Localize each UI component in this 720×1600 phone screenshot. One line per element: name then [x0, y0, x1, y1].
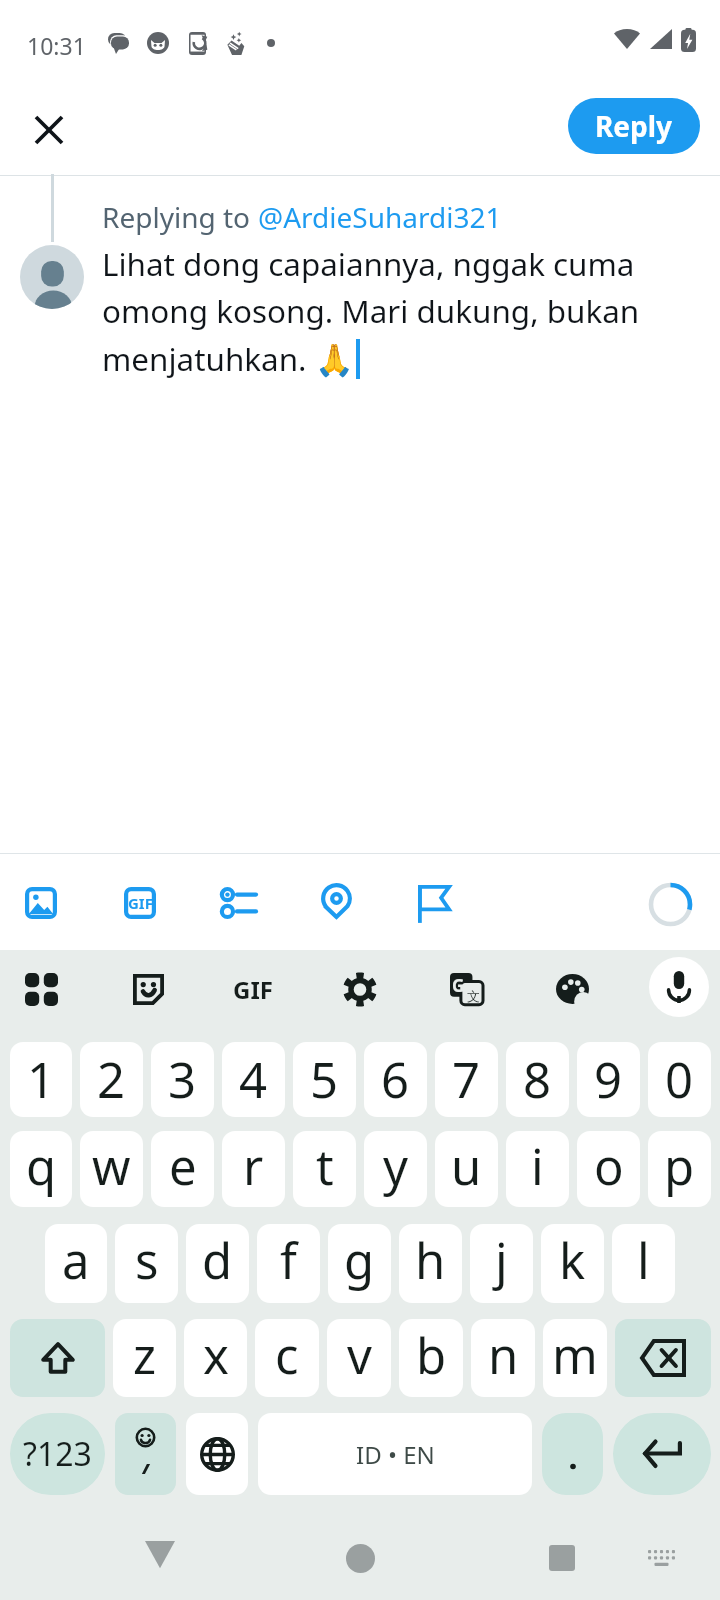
- staticText: 8: [523, 1046, 552, 1113]
- staticText: 3: [168, 1046, 197, 1113]
- staticText: 9: [594, 1046, 623, 1113]
- button[interactable]: Characters remaining: [646, 878, 695, 927]
- staticText: g: [344, 1227, 375, 1294]
- button[interactable]: Apps: [15, 963, 67, 1015]
- button[interactable]: 9: [577, 1042, 640, 1117]
- button[interactable]: Close: [20, 101, 77, 158]
- button[interactable]: Translate: [440, 963, 492, 1015]
- button[interactable]: Hide keyboard: [627, 1524, 695, 1592]
- button[interactable]: [542, 1413, 603, 1495]
- button[interactable]: m: [543, 1319, 607, 1397]
- button[interactable]: 6: [364, 1042, 427, 1117]
- staticText: p: [664, 1133, 695, 1200]
- button[interactable]: e: [151, 1131, 214, 1207]
- button[interactable]: Emoji and comma: [115, 1413, 176, 1495]
- staticText: 5: [310, 1046, 339, 1113]
- staticText: 6: [381, 1046, 410, 1113]
- button[interactable]: Recents: [528, 1524, 596, 1592]
- staticText: 1: [27, 1046, 56, 1113]
- staticText: n: [488, 1322, 519, 1389]
- button[interactable]: a: [45, 1224, 107, 1303]
- button[interactable]: Backspace: [615, 1319, 711, 1397]
- button[interactable]: u: [435, 1131, 498, 1207]
- button[interactable]: z: [113, 1319, 176, 1397]
- staticText: c: [275, 1322, 299, 1389]
- button[interactable]: Add GIF: [112, 875, 168, 931]
- button[interactable]: g: [328, 1224, 391, 1303]
- button[interactable]: Voice input: [649, 957, 709, 1017]
- staticText: 2: [97, 1046, 126, 1113]
- button[interactable]: 7: [435, 1042, 498, 1117]
- button[interactable]: Shift: [10, 1319, 105, 1397]
- button[interactable]: Change language: [186, 1413, 248, 1495]
- button[interactable]: 3: [151, 1042, 214, 1117]
- button[interactable]: Location: [308, 875, 364, 931]
- staticText: t: [316, 1133, 334, 1200]
- staticText: e: [169, 1133, 197, 1200]
- button[interactable]: Settings: [334, 963, 386, 1015]
- staticText: q: [26, 1133, 57, 1200]
- button[interactable]: w: [80, 1131, 143, 1207]
- button[interactable]: h: [399, 1224, 462, 1303]
- staticText: s: [135, 1227, 159, 1294]
- button[interactable]: Add photo: [13, 875, 69, 931]
- button[interactable]: d: [186, 1224, 249, 1303]
- button[interactable]: p: [648, 1131, 711, 1207]
- staticText: 10:31: [27, 30, 86, 61]
- staticText: l: [637, 1227, 650, 1294]
- staticText: x: [203, 1322, 229, 1389]
- staticText: b: [416, 1322, 447, 1389]
- staticText: m: [552, 1322, 598, 1389]
- button[interactable]: n: [471, 1319, 535, 1397]
- button[interactable]: v: [327, 1319, 391, 1397]
- button[interactable]: Themes: [546, 963, 598, 1015]
- staticText: v: [347, 1322, 372, 1389]
- button[interactable]: b: [399, 1319, 463, 1397]
- button[interactable]: Enter: [613, 1413, 711, 1495]
- button[interactable]: q: [10, 1131, 72, 1207]
- button[interactable]: 8: [506, 1042, 569, 1117]
- staticText: i: [531, 1133, 544, 1200]
- staticText: o: [594, 1133, 624, 1200]
- button[interactable]: f: [257, 1224, 320, 1303]
- button[interactable]: j: [470, 1224, 533, 1303]
- staticText: Replying to: [102, 198, 258, 236]
- button[interactable]: Back: [126, 1524, 194, 1592]
- button[interactable]: 5: [293, 1042, 356, 1117]
- staticText: y: [383, 1133, 408, 1200]
- staticText: 4: [239, 1046, 268, 1113]
- button[interactable]: l: [612, 1224, 675, 1303]
- button[interactable]: 2: [80, 1042, 143, 1117]
- button[interactable]: ?123: [10, 1413, 105, 1495]
- button[interactable]: t: [293, 1131, 356, 1207]
- button[interactable]: 4: [222, 1042, 285, 1117]
- staticText: GIF: [128, 893, 153, 913]
- button[interactable]: y: [364, 1131, 427, 1207]
- staticText: ?123: [23, 1432, 92, 1476]
- staticText: k: [559, 1227, 586, 1294]
- button[interactable]: Home: [326, 1524, 394, 1592]
- staticText: 文: [467, 988, 480, 1004]
- button[interactable]: x: [184, 1319, 247, 1397]
- button[interactable]: Reply: [568, 98, 700, 154]
- button[interactable]: k: [541, 1224, 604, 1303]
- button[interactable]: Community: [406, 875, 462, 931]
- button[interactable]: c: [255, 1319, 319, 1397]
- button[interactable]: i: [506, 1131, 569, 1207]
- button[interactable]: 0: [648, 1042, 711, 1117]
- button[interactable]: ID • EN: [258, 1413, 532, 1495]
- button[interactable]: 1: [10, 1042, 72, 1117]
- button[interactable]: o: [577, 1131, 640, 1207]
- staticText: GIF: [233, 973, 273, 1006]
- button[interactable]: GIF keyboard: [227, 963, 279, 1015]
- staticText: z: [133, 1322, 157, 1389]
- staticText: @ArdieSuhardi321: [258, 198, 502, 236]
- staticText: 7: [452, 1046, 481, 1113]
- button[interactable]: r: [222, 1131, 285, 1207]
- staticText: f: [280, 1227, 297, 1294]
- button[interactable]: s: [115, 1224, 178, 1303]
- button[interactable]: Poll: [211, 875, 267, 931]
- button[interactable]: Stickers: [122, 963, 174, 1015]
- staticText: 0: [665, 1046, 694, 1113]
- staticText: j: [495, 1227, 508, 1294]
